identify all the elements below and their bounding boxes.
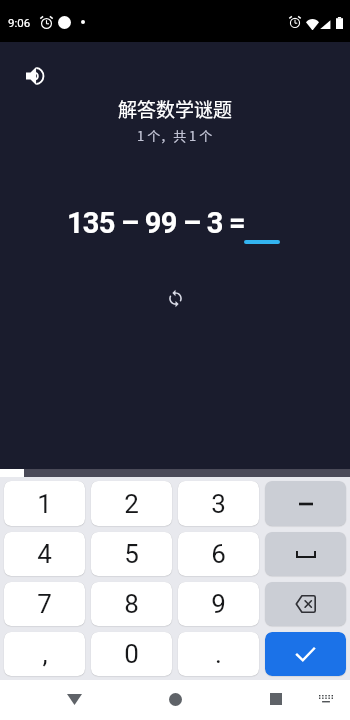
- staticText: 解答数学谜题: [118, 95, 233, 123]
- button[interactable]: 4: [4, 532, 85, 576]
- staticText: 1: [37, 489, 52, 519]
- button[interactable]: 6: [178, 532, 259, 576]
- staticText: 2: [124, 489, 139, 519]
- button[interactable]: Recents: [259, 682, 293, 716]
- button[interactable]: 1: [4, 481, 85, 526]
- button[interactable]: 3: [178, 481, 259, 526]
- staticText: ,: [42, 639, 48, 669]
- staticText: 1 个，共 1 个: [137, 126, 213, 145]
- button[interactable]: 9: [178, 582, 259, 626]
- button[interactable]: ,: [4, 632, 85, 676]
- button[interactable]: Backspace: [265, 582, 346, 626]
- button[interactable]: Sound: [20, 61, 50, 91]
- button[interactable]: 2: [91, 481, 172, 526]
- button[interactable]: .: [178, 632, 259, 676]
- button[interactable]: 0: [91, 632, 172, 676]
- button[interactable]: Space: [265, 532, 346, 576]
- button[interactable]: 7: [4, 582, 85, 626]
- staticText: 8: [124, 589, 139, 619]
- button[interactable]: Switch keyboard: [311, 684, 341, 714]
- staticText: 7: [37, 589, 52, 619]
- staticText: 9: [211, 589, 226, 619]
- button[interactable]: 5: [91, 532, 172, 576]
- staticText: .: [215, 639, 222, 669]
- staticText: 5: [124, 539, 139, 569]
- button[interactable]: Minus: [265, 481, 346, 526]
- staticText: 3: [211, 489, 226, 519]
- staticText: 6: [211, 539, 226, 569]
- button[interactable]: Back: [57, 682, 91, 716]
- button[interactable]: Refresh: [160, 283, 190, 313]
- staticText: 9:06: [8, 16, 31, 29]
- staticText: 4: [37, 539, 52, 569]
- button[interactable]: 8: [91, 582, 172, 626]
- button[interactable]: Home: [158, 682, 192, 716]
- button[interactable]: Enter: [265, 632, 346, 676]
- staticText: 135 – 99 – 3 =: [67, 206, 245, 240]
- staticText: 0: [124, 639, 139, 669]
